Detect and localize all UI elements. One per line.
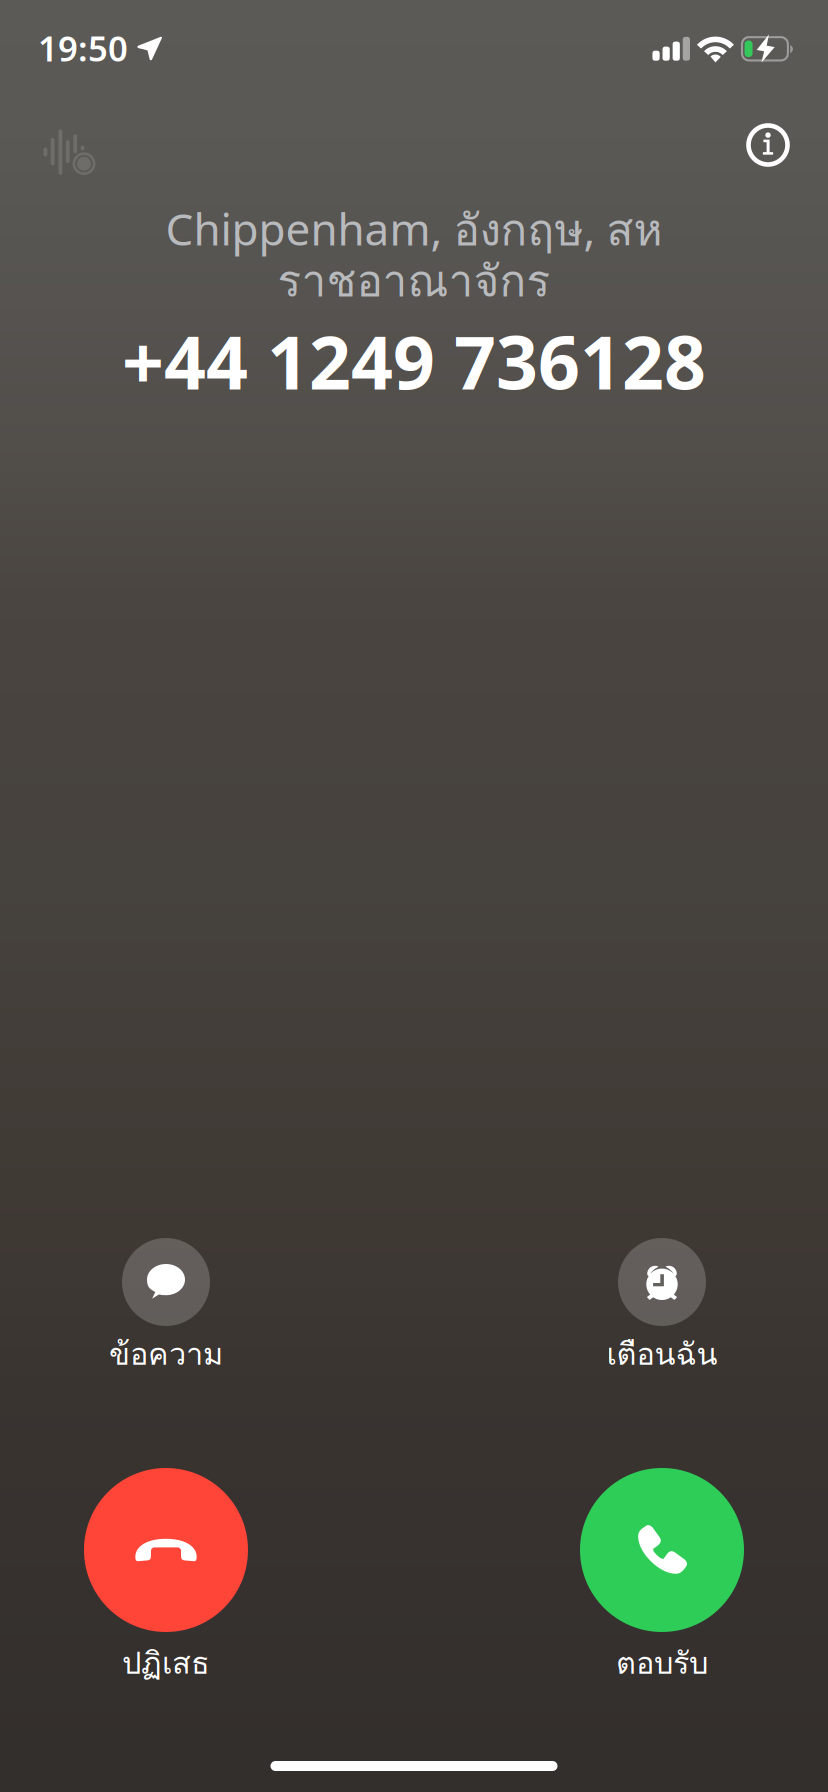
button[interactable]: Call info — [739, 116, 796, 173]
staticText: ปฏิเสธ — [122, 1639, 210, 1687]
button[interactable]: ปฏิเสธ — [16, 1468, 316, 1689]
staticText: ข้อความ — [109, 1330, 223, 1378]
staticText: +44 1249 736128 — [122, 312, 706, 410]
button[interactable]: ตอบรับ — [512, 1468, 812, 1689]
staticText: 19:50 — [38, 25, 128, 71]
staticText: ตอบรับ — [616, 1639, 708, 1687]
staticText: Chippenham, อังกฤษ, สห — [165, 196, 662, 264]
staticText: เตือนฉัน — [606, 1330, 717, 1378]
staticText: ราชอาณาจักร — [277, 247, 550, 315]
button[interactable]: เตือนฉัน — [512, 1238, 812, 1380]
button[interactable]: ข้อความ — [16, 1238, 316, 1380]
